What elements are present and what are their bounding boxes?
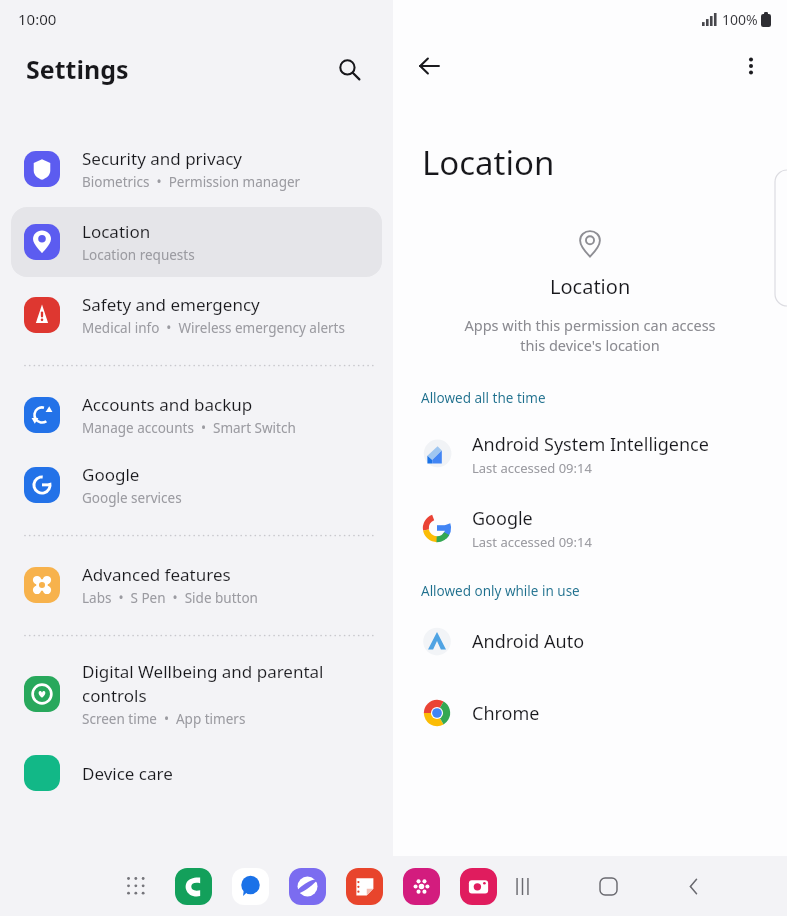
button[interactable]: Camera <box>457 865 499 907</box>
staticText: Chrome <box>472 701 540 726</box>
button[interactable]: Back <box>672 864 716 908</box>
button[interactable]: Accounts and backup <box>11 380 382 450</box>
button[interactable]: Home <box>586 864 630 908</box>
staticText: Android Auto <box>472 629 585 654</box>
staticText: Location <box>82 220 151 243</box>
staticText: Safety and emergency <box>82 293 260 316</box>
button[interactable]: Google <box>393 502 787 554</box>
staticText: Accounts and backup <box>82 393 253 416</box>
staticText: Apps with this permission can access thi… <box>464 315 716 356</box>
button[interactable]: Notes <box>343 865 385 907</box>
staticText: Google <box>82 463 140 486</box>
staticText: Manage accounts • Smart Switch <box>82 419 296 437</box>
staticText: Advanced features <box>82 563 231 586</box>
button[interactable]: Security and privacy <box>11 134 382 204</box>
button[interactable]: Safety and emergency <box>11 280 382 350</box>
button[interactable]: Advanced features <box>11 550 382 620</box>
staticText: Location requests <box>82 246 195 264</box>
button[interactable]: Android Auto <box>393 619 787 663</box>
staticText: Google <box>472 506 533 531</box>
button[interactable]: Chrome <box>393 691 787 735</box>
button[interactable]: Phone <box>172 865 214 907</box>
staticText: Allowed all the time <box>421 389 546 407</box>
staticText: Android System Intelligence <box>472 432 709 457</box>
button[interactable]: Back <box>407 44 451 88</box>
staticText: Location <box>550 273 631 300</box>
button[interactable]: Digital Wellbeing and parental controls <box>11 650 382 738</box>
staticText: Biometrics • Permission manager <box>82 173 301 191</box>
staticText: Allowed only while in use <box>421 582 580 600</box>
button[interactable]: Gallery <box>400 865 442 907</box>
button[interactable]: Recents <box>500 864 544 908</box>
button[interactable]: Messages <box>229 865 271 907</box>
button[interactable]: Device care <box>11 738 382 808</box>
staticText: Location <box>422 140 555 185</box>
staticText: Security and privacy <box>82 147 243 170</box>
button[interactable]: Internet <box>286 865 328 907</box>
staticText: Digital Wellbeing and parental controls <box>82 660 324 707</box>
button[interactable]: Google <box>11 450 382 520</box>
staticText: Screen time • App timers <box>82 710 246 728</box>
button[interactable]: Location <box>11 207 382 277</box>
staticText: Labs • S Pen • Side button <box>82 589 258 607</box>
staticText: 100% <box>722 10 758 29</box>
staticText: Settings <box>26 52 129 86</box>
button[interactable]: More options <box>729 44 773 88</box>
button[interactable]: Apps <box>115 865 157 907</box>
staticText: Medical info • Wireless emergency alerts <box>82 319 345 337</box>
staticText: 10:00 <box>18 9 57 29</box>
button[interactable]: Android System Intelligence <box>393 428 787 480</box>
staticText: Last accessed 09:14 <box>472 533 592 551</box>
button[interactable]: Search <box>329 49 369 89</box>
staticText: Google services <box>82 489 182 507</box>
staticText: Device care <box>82 762 173 785</box>
staticText: Last accessed 09:14 <box>472 459 592 477</box>
